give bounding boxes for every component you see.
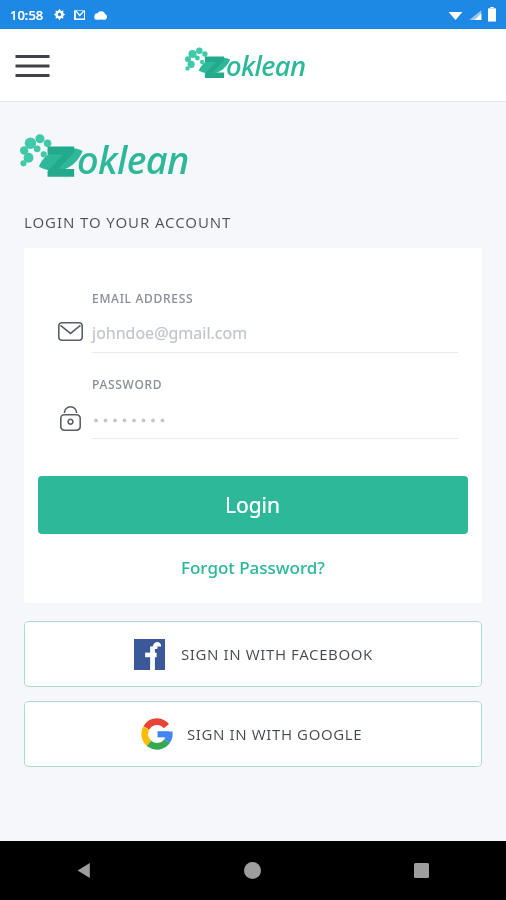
button[interactable]: Forgot Password? [24,556,482,579]
staticText: SIGN IN WITH GOOGLE [187,724,363,744]
staticText: oklean [226,47,306,84]
staticText: Forgot Password? [181,556,325,579]
staticText: 10:58 [10,6,44,24]
button[interactable]: SIGN IN WITH GOOGLE [24,701,482,767]
staticText: oklean [77,133,189,185]
button[interactable]: Home [168,841,337,900]
staticText: LOGIN TO YOUR ACCOUNT [24,212,232,232]
staticText: Login [225,491,281,520]
button[interactable]: Login [38,476,468,534]
button[interactable]: Recent apps [337,841,506,900]
staticText: PASSWORD [92,376,163,392]
button[interactable]: Open navigation menu [6,40,58,92]
staticText: SIGN IN WITH FACEBOOK [181,644,373,664]
button[interactable]: johndoe@gmail.com [92,320,458,346]
staticText: EMAIL ADDRESS [92,290,194,306]
button[interactable] [92,406,458,432]
button[interactable]: Back [0,841,168,900]
button[interactable]: SIGN IN WITH FACEBOOK [24,621,482,687]
staticText: johndoe@gmail.com [92,322,248,344]
